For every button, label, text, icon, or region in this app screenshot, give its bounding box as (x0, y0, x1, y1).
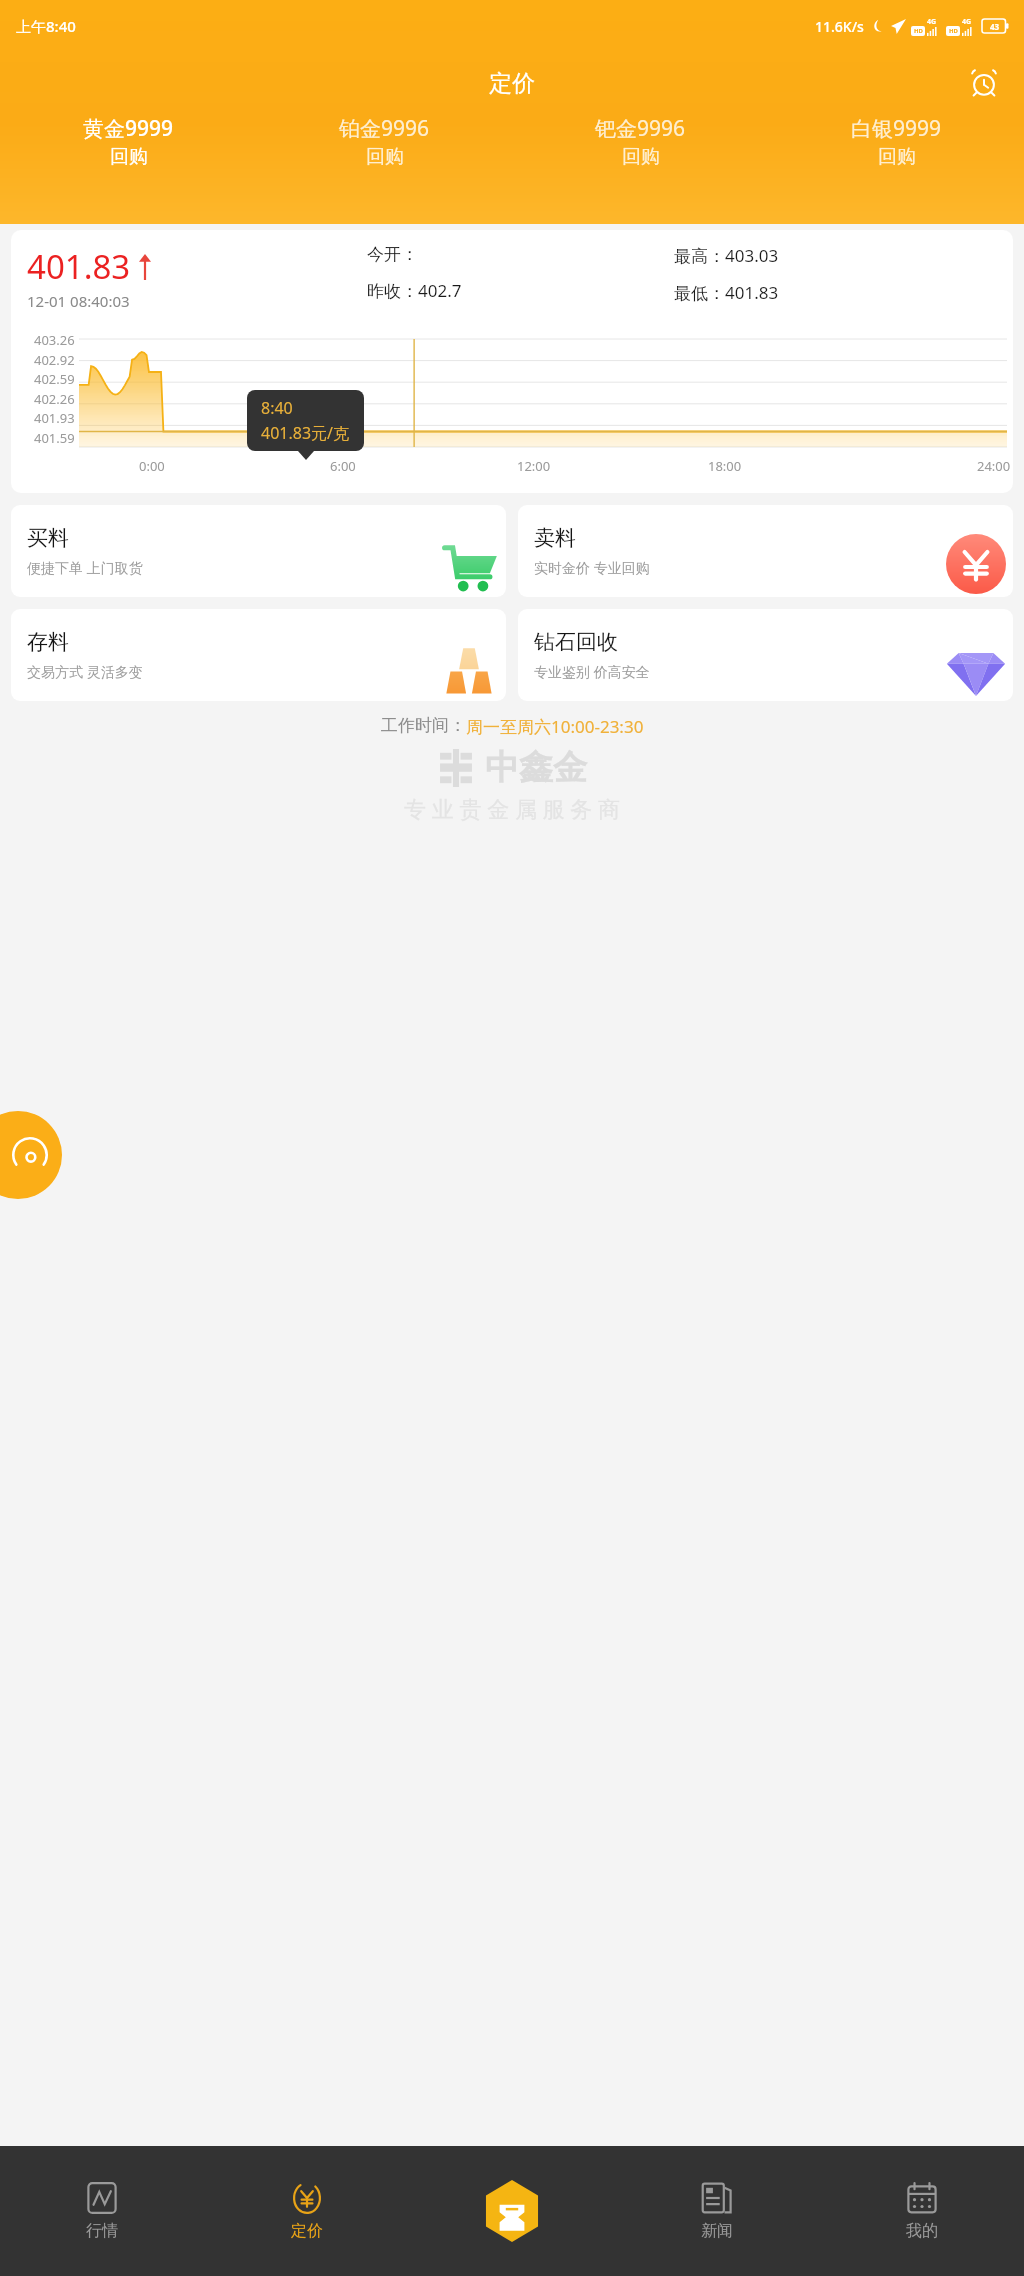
staticText: 0:00 (139, 457, 165, 475)
staticText: 今开： (367, 244, 418, 265)
button[interactable]: 买料 (11, 505, 506, 597)
staticText: HD (949, 27, 958, 35)
staticText: 白银9999 (851, 114, 942, 143)
button[interactable]: 新闻 (614, 2146, 819, 2276)
staticText: 4G (962, 17, 972, 27)
staticText: 24:00 (977, 457, 1011, 475)
staticText: 402.92 (34, 351, 75, 369)
button[interactable]: 金库 (409, 2146, 614, 2276)
staticText: 402.59 (34, 370, 75, 388)
staticText: 我的 (906, 2221, 938, 2241)
button[interactable]: 我的 (819, 2146, 1024, 2276)
staticText: 8:40 (261, 397, 293, 419)
staticText: 存料 (27, 629, 69, 655)
staticText: 403.26 (34, 331, 75, 349)
staticText: 回购 (878, 145, 916, 169)
button[interactable]: 铂金9996 (256, 114, 512, 214)
staticText: 11.6K/s (815, 17, 864, 36)
button[interactable]: 定价 (204, 2146, 409, 2276)
staticText: 专业鉴别 价高安全 (534, 662, 650, 681)
staticText: 12:00 (517, 457, 551, 475)
staticText: 昨收：402.7 (367, 279, 462, 302)
staticText: 402.26 (34, 390, 75, 408)
button[interactable]: 卖料 (518, 505, 1013, 597)
staticText: 12-01 08:40:03 (27, 291, 130, 311)
staticText: 18:00 (708, 457, 742, 475)
staticText: 周一至周六10:00-23:30 (466, 715, 644, 738)
staticText: 回购 (110, 145, 148, 169)
staticText: 卖料 (534, 525, 576, 551)
staticText: 43 (990, 21, 1000, 32)
staticText: 行情 (86, 2221, 118, 2241)
staticText: 定价 (291, 2221, 323, 2241)
staticText: 铂金9996 (339, 114, 430, 143)
staticText: 钻石回收 (534, 629, 618, 655)
button[interactable]: 钯金9996 (512, 114, 768, 214)
staticText: 新闻 (701, 2221, 733, 2241)
button[interactable]: 在线客服 (0, 1111, 62, 1199)
button[interactable]: 黄金9999 (0, 114, 256, 214)
staticText: 黄金9999 (83, 114, 174, 143)
staticText: 上午8:40 (16, 16, 76, 36)
staticText: 401.83元/克 (261, 422, 350, 444)
staticText: 工作时间： (381, 715, 466, 736)
staticText: 交易方式 灵活多变 (27, 662, 143, 681)
staticText: HD (914, 27, 923, 35)
button[interactable]: 行情 (0, 2146, 204, 2276)
staticText: 专 业 贵 金 属 服 务 商 (404, 793, 621, 823)
staticText: 买料 (27, 525, 69, 551)
staticText: 最高：403.03 (674, 244, 779, 267)
staticText: 最低：401.83 (674, 281, 779, 304)
staticText: 回购 (366, 145, 404, 169)
button[interactable]: 存料 (11, 609, 506, 701)
staticText: 6:00 (330, 457, 356, 475)
staticText: 4G (927, 17, 937, 27)
staticText: 定价 (489, 69, 535, 98)
staticText: 实时金价 专业回购 (534, 558, 650, 577)
staticText: 401.59 (34, 429, 75, 447)
staticText: 钯金9996 (595, 114, 686, 143)
button[interactable]: 钻石回收 (518, 609, 1013, 701)
staticText: 便捷下单 上门取货 (27, 558, 143, 577)
staticText: 401.93 (34, 409, 75, 427)
button[interactable]: 提醒 (962, 61, 1006, 105)
button[interactable]: 白银9999 (768, 114, 1024, 214)
staticText: 中鑫金 (485, 746, 587, 789)
staticText: 回购 (622, 145, 660, 169)
staticText: 401.83 (27, 244, 131, 289)
